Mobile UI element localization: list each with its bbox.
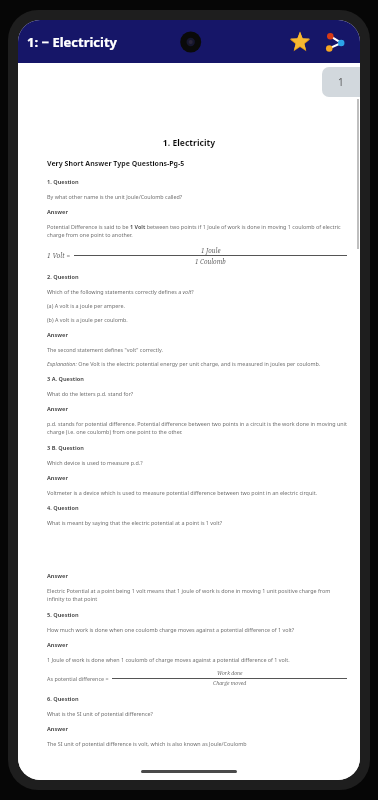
staticText: (b) A volt is a joule per coulomb. xyxy=(47,316,128,323)
staticText: 6. Question xyxy=(47,695,79,703)
staticText: 1 Volt = xyxy=(47,251,71,260)
staticText: The second statement defines "volt" corr… xyxy=(47,346,163,353)
staticText: Answer xyxy=(47,641,68,649)
staticText: 4. Question xyxy=(47,504,79,512)
staticText: What is the SI unit of potential differe… xyxy=(47,710,153,717)
staticText: Explanation: One Volt is the electric po… xyxy=(47,360,321,367)
staticText: Charge moved xyxy=(213,680,247,687)
staticText: 2. Question xyxy=(47,273,79,281)
button[interactable]: Favourite xyxy=(283,25,317,59)
staticText: Answer xyxy=(47,474,68,482)
staticText: Answer xyxy=(47,725,68,733)
staticText: 1: − Electricity xyxy=(27,33,118,51)
staticText: Work done xyxy=(217,670,243,677)
staticText: Answer xyxy=(47,572,68,580)
staticText: p.d. stands for potential difference. Po… xyxy=(47,420,347,436)
staticText: As potential difference = xyxy=(47,675,109,682)
staticText: Which device is used to measure p.d.? xyxy=(47,459,143,466)
staticText: Potential Difference is said to be 1 Vol… xyxy=(47,223,347,239)
button[interactable]: Share xyxy=(317,25,351,59)
staticText: What is meant by saying that the electri… xyxy=(47,519,223,526)
staticText: 1 Joule of work is done when 1 coulomb o… xyxy=(47,656,290,663)
staticText: Electric Potential at a point being 1 vo… xyxy=(47,587,347,603)
staticText: (a) A volt is a joule per ampere. xyxy=(47,302,125,309)
staticText: How much work is done when one coulomb c… xyxy=(47,626,295,633)
staticText: Answer xyxy=(47,208,68,216)
staticText: 5. Question xyxy=(47,611,79,619)
staticText: By what other name is the unit Joule/Cou… xyxy=(47,193,183,200)
staticText: 3 A. Question xyxy=(47,375,84,383)
staticText: 1 xyxy=(338,75,344,89)
staticText: 3 B. Question xyxy=(47,444,84,452)
staticText: 1. Electricity xyxy=(47,137,331,149)
staticText: Answer xyxy=(47,331,68,339)
staticText: Voltmeter is a device which is used to m… xyxy=(47,489,318,496)
staticText: 1 Coulomb xyxy=(195,257,226,265)
button[interactable]: 1 xyxy=(322,67,360,97)
staticText: 1 Joule xyxy=(201,246,221,254)
staticText: Which of the following statements correc… xyxy=(47,288,194,295)
staticText: Very Short Answer Type Questions-Pg-5 xyxy=(47,159,185,169)
staticText: 1. Question xyxy=(47,178,79,186)
staticText: The SI unit of potential difference is v… xyxy=(47,740,247,747)
staticText: Answer xyxy=(47,405,68,413)
staticText: What do the letters p.d. stand for? xyxy=(47,390,134,397)
